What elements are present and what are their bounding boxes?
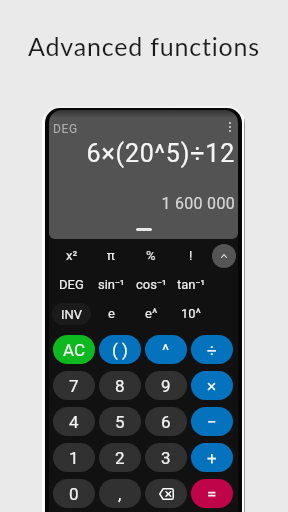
button[interactable]: e^ [131,299,171,328]
button[interactable]: x² [52,241,91,270]
button[interactable]: × [191,371,233,400]
staticText: 3 [161,448,171,468]
button[interactable]: 8 [99,371,141,400]
button[interactable]: Backspace [145,479,187,508]
button[interactable]: sin⁻¹ [91,270,131,299]
staticText: e [108,306,115,321]
button[interactable]: DEG [52,270,91,299]
staticText: 10^ [181,306,202,321]
button[interactable]: = [191,479,233,508]
button[interactable]: 0 [53,479,95,508]
button[interactable]: 3 [145,443,187,472]
staticText: x² [66,248,78,263]
staticText: 2 [115,448,125,468]
button[interactable]: % [131,241,171,270]
button[interactable]: tan⁻¹ [171,270,211,299]
button[interactable]: ( ) [99,335,141,364]
staticText: INV [61,307,83,322]
staticText: , [118,484,122,504]
button[interactable]: ÷ [191,335,233,364]
staticText: sin⁻¹ [98,277,125,292]
staticText: = [207,484,217,504]
staticText: tan⁻¹ [177,277,206,292]
staticText: ÷ [207,340,217,360]
staticText: % [146,248,156,263]
staticText: AC [63,340,86,360]
button[interactable]: 9 [145,371,187,400]
button[interactable]: 10^ [171,299,211,328]
button[interactable]: 5 [99,407,141,436]
button[interactable]: , [99,479,141,508]
button[interactable]: 6 [145,407,187,436]
staticText: cos⁻¹ [136,277,167,292]
staticText: − [207,412,217,432]
staticText: 1 600 000 [49,194,235,213]
staticText: 4 [69,412,79,432]
staticText: DEG [53,122,78,136]
button[interactable]: INV [52,299,91,328]
staticText: 6 [161,412,171,432]
staticText: × [207,376,217,396]
button[interactable]: + [191,443,233,472]
button[interactable]: 1 [53,443,95,472]
staticText: Advanced functions [0,31,288,61]
staticText: ^ [162,340,170,360]
staticText: 8 [115,376,125,396]
staticText: π [107,248,115,263]
staticText: ! [189,248,193,263]
staticText: 0 [69,484,79,504]
staticText: 7 [69,376,79,396]
button[interactable]: ! [171,241,211,270]
staticText: 6×(20^5)÷12 [49,139,235,168]
staticText: e^ [145,306,158,321]
button[interactable]: − [191,407,233,436]
staticText: ( ) [112,340,128,360]
staticText: 5 [115,412,125,432]
button[interactable]: More options [221,118,238,136]
button[interactable]: AC [53,335,95,364]
button[interactable]: Collapse [212,244,236,268]
button[interactable]: 7 [53,371,95,400]
button[interactable]: Drag handle [136,228,152,231]
button[interactable]: 2 [99,443,141,472]
button[interactable]: ^ [145,335,187,364]
staticText: DEG [59,277,84,292]
button[interactable]: 4 [53,407,95,436]
staticText: + [207,448,217,468]
staticText: 1 [69,448,79,468]
staticText: 9 [161,376,171,396]
button[interactable]: cos⁻¹ [131,270,171,299]
button[interactable]: π [91,241,131,270]
button[interactable]: e [91,299,131,328]
